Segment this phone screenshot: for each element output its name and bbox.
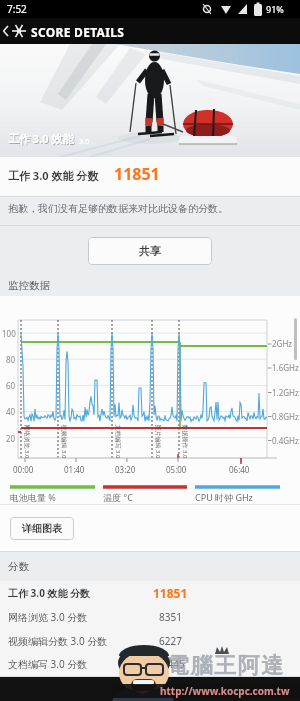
staticText: 60 [6, 380, 16, 390]
staticText: 详细图表 [22, 522, 62, 535]
staticText: 電腦王阿達 [167, 652, 285, 680]
staticText: 文档编写 3.0 分数 [8, 657, 88, 671]
staticText: 00:00 [13, 464, 34, 475]
staticText: 共享 [139, 244, 161, 258]
staticText: 80 [6, 354, 16, 364]
staticText: 05:00 [166, 464, 187, 475]
staticText: 8351 [159, 610, 182, 624]
staticText: 03:20 [115, 464, 136, 475]
button[interactable] [0, 18, 300, 44]
staticText: 0.8GHz [272, 411, 299, 422]
staticText: 7:52 [7, 2, 27, 16]
staticText: http://www.kocpc.com.tw [160, 684, 290, 698]
staticText: CPU 时钟 GHz [195, 491, 253, 503]
staticText: 监控数据 [8, 279, 50, 292]
staticText: 网络浏览 3.0 [22, 424, 30, 459]
staticText: 视频编辑分数 3.0 分数 [8, 634, 108, 648]
button[interactable]: 文档编写 3.0 分数 [0, 652, 300, 676]
staticText: 40 [6, 406, 16, 416]
staticText: 100 [2, 328, 16, 338]
button[interactable]: 视频编辑分数 3.0 分数 [0, 629, 300, 652]
staticText: 3.0 [79, 137, 89, 147]
staticText: 温度 °C [103, 491, 133, 503]
staticText: 2GHz [272, 338, 293, 349]
staticText: 工作 3.0 效能 分数 [8, 168, 99, 183]
staticText: 91% [266, 3, 284, 15]
staticText: 电池电量 % [10, 491, 56, 503]
staticText: 15445 [156, 657, 185, 671]
staticText: 20 [6, 433, 16, 443]
staticText: 11851 [114, 163, 160, 185]
button[interactable]: 详细图表 [10, 517, 74, 540]
button[interactable]: 工作 3.0 效能 分数 [0, 581, 300, 605]
button[interactable]: 共享 [88, 237, 212, 265]
staticText: 6227 [159, 634, 182, 648]
staticText: 11851 [153, 585, 188, 601]
staticText: 1.2GHz [272, 387, 299, 398]
button[interactable]: 网络浏览 3.0 分数 [0, 605, 300, 629]
staticText: 0.4GHz [272, 435, 299, 446]
staticText: 工作 3.0 效能 [8, 131, 74, 146]
staticText: SCORE DETAILS [31, 24, 125, 40]
staticText: 1.6GHz [272, 362, 299, 373]
staticText: 文档编写 3.0 [113, 424, 121, 459]
staticText: 网络浏览 3.0 分数 [8, 610, 88, 624]
staticText: 分数 [8, 560, 29, 573]
staticText: 01:40 [64, 464, 85, 475]
staticText: 图片编辑 3.0 [153, 424, 161, 459]
staticText: 工作 3.0 效能 [9, 132, 75, 147]
staticText: 抱歉，我们没有足够的数据来对比此设备的分数。 [8, 202, 228, 215]
staticText: 数据操作 3.0 [180, 424, 188, 459]
staticText: 视频编辑 3.0 [59, 424, 67, 459]
staticText: 工作 3.0 效能 分数 [8, 586, 91, 600]
staticText: 06:40 [229, 464, 250, 475]
